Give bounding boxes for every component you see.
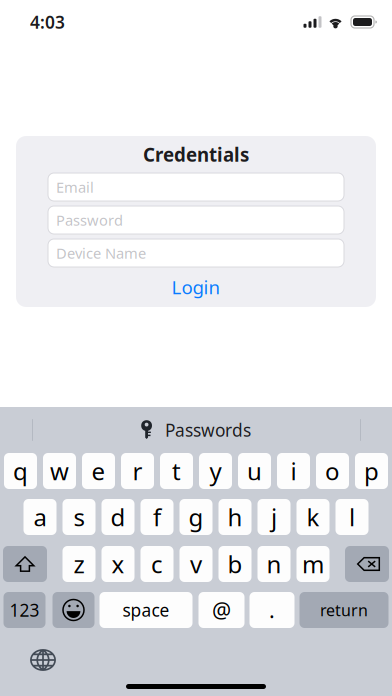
staticText: j <box>271 501 277 533</box>
staticText: Passwords <box>165 418 251 441</box>
staticText: o <box>325 455 340 487</box>
staticText: f <box>153 501 161 533</box>
staticText: e <box>91 455 105 487</box>
staticText: Login <box>171 275 220 299</box>
staticText: k <box>306 501 319 533</box>
button[interactable]: h <box>218 499 251 535</box>
button[interactable]: Device Name <box>48 239 344 267</box>
button[interactable]: r <box>121 453 154 489</box>
staticText: u <box>247 455 262 487</box>
staticText: space <box>122 598 169 621</box>
button[interactable]: p <box>355 453 388 489</box>
button[interactable]: Next keyboard <box>26 643 60 677</box>
button[interactable]: f <box>140 499 173 535</box>
button[interactable]: 123 <box>3 592 45 628</box>
staticText: 4:03 <box>30 10 65 33</box>
staticText: s <box>73 501 84 533</box>
button[interactable]: o <box>316 453 349 489</box>
button[interactable]: Login <box>48 267 344 307</box>
button[interactable]: c <box>140 546 173 582</box>
staticText: Device Name <box>56 243 146 263</box>
button[interactable]: Delete <box>345 546 389 582</box>
staticText: return <box>320 599 368 621</box>
button[interactable]: z <box>62 546 95 582</box>
staticText: x <box>111 548 124 580</box>
button[interactable]: s <box>62 499 95 535</box>
staticText: t <box>172 455 181 487</box>
staticText: h <box>227 501 242 533</box>
staticText: m <box>302 548 324 580</box>
button[interactable]: return <box>299 592 388 628</box>
staticText: v <box>190 548 202 580</box>
staticText: Password <box>56 210 123 230</box>
staticText: y <box>209 455 221 487</box>
button[interactable]: q <box>4 453 37 489</box>
button[interactable]: i <box>277 453 310 489</box>
staticText: w <box>50 455 69 487</box>
button[interactable]: l <box>335 499 368 535</box>
staticText: Email <box>56 177 94 197</box>
button[interactable]: e <box>82 453 115 489</box>
button[interactable]: t <box>160 453 193 489</box>
button[interactable]: j <box>257 499 290 535</box>
button[interactable]: Password <box>48 206 344 234</box>
staticText: q <box>13 455 28 487</box>
staticText: @ <box>212 596 231 624</box>
staticText: b <box>227 548 242 580</box>
button[interactable]: Shift <box>3 546 47 582</box>
button[interactable]: x <box>101 546 134 582</box>
staticText: n <box>266 548 281 580</box>
staticText: 123 <box>9 598 39 621</box>
staticText: r <box>132 455 142 487</box>
button[interactable]: n <box>257 546 290 582</box>
button[interactable]: Emoji <box>52 592 94 628</box>
staticText: p <box>364 455 379 487</box>
button[interactable]: u <box>238 453 271 489</box>
staticText: z <box>73 548 84 580</box>
button[interactable]: a <box>23 499 56 535</box>
button[interactable]: . <box>249 592 294 628</box>
staticText: g <box>188 501 203 533</box>
button[interactable]: y <box>199 453 232 489</box>
staticText: a <box>33 501 46 533</box>
staticText: . <box>269 596 275 624</box>
button[interactable]: space <box>99 592 192 628</box>
button[interactable]: Email <box>48 173 344 201</box>
button[interactable]: w <box>43 453 76 489</box>
button[interactable]: d <box>101 499 134 535</box>
button[interactable]: m <box>296 546 329 582</box>
button[interactable]: v <box>179 546 212 582</box>
staticText: d <box>110 501 125 533</box>
staticText: Credentials <box>143 142 249 167</box>
button[interactable]: k <box>296 499 329 535</box>
button[interactable]: g <box>179 499 212 535</box>
staticText: c <box>151 548 163 580</box>
staticText: l <box>349 501 355 533</box>
button[interactable]: b <box>218 546 251 582</box>
button[interactable]: @ <box>198 592 244 628</box>
staticText: i <box>290 455 296 487</box>
